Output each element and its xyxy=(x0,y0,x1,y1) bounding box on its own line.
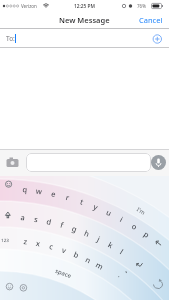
staticText: 12:25 PM xyxy=(74,3,95,10)
button[interactable]: Cancel xyxy=(135,12,167,28)
staticText: 76% xyxy=(137,3,146,9)
button[interactable] xyxy=(26,153,151,172)
button[interactable] xyxy=(0,176,169,300)
staticText: New Message xyxy=(59,15,110,25)
staticText: To: xyxy=(6,34,15,43)
staticText: Cancel xyxy=(139,15,163,25)
button[interactable] xyxy=(4,153,23,170)
button[interactable] xyxy=(149,31,165,47)
button[interactable] xyxy=(151,155,166,170)
staticText: Verizon xyxy=(21,3,37,9)
button[interactable]: To: xyxy=(0,29,169,47)
